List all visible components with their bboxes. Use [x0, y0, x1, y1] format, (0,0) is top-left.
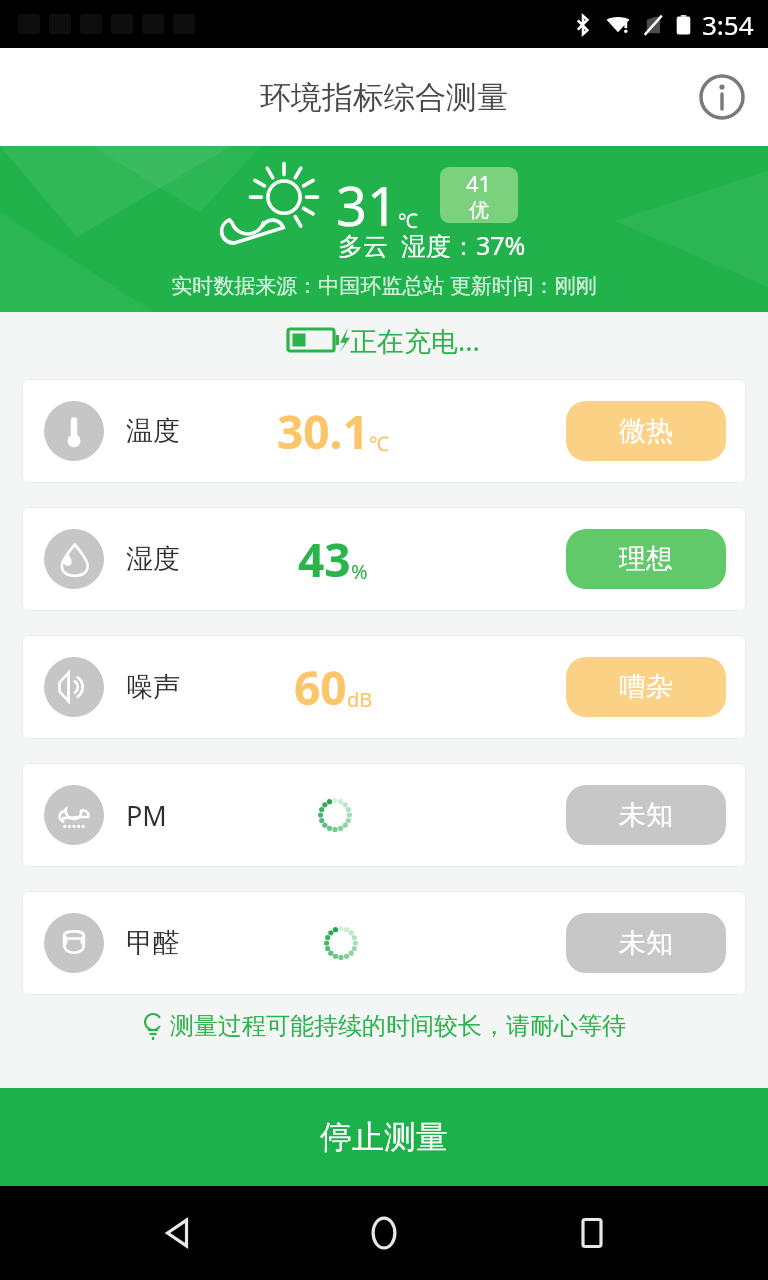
- button[interactable]: 温度: [22, 379, 746, 483]
- staticText: 未知: [619, 798, 673, 832]
- staticText: 多云 湿度：37%: [338, 228, 526, 262]
- staticText: 甲醛: [126, 926, 180, 960]
- staticText: PM: [126, 797, 167, 834]
- staticText: 微热: [619, 414, 673, 448]
- button[interactable]: 湿度: [22, 507, 746, 611]
- button[interactable]: 噪声: [22, 635, 746, 739]
- staticText: 优: [469, 198, 489, 223]
- staticText: ℃: [398, 207, 418, 234]
- staticText: 温度: [126, 414, 180, 448]
- staticText: 环境指标综合测量: [260, 78, 508, 117]
- staticText: ℃: [369, 430, 389, 457]
- button[interactable]: PM: [22, 763, 746, 867]
- button[interactable]: 未知: [566, 785, 726, 845]
- button[interactable]: 嘈杂: [566, 657, 726, 717]
- staticText: 未知: [619, 926, 673, 960]
- button[interactable]: Back: [146, 1202, 208, 1264]
- staticText: 30.1: [277, 400, 369, 463]
- staticText: 嘈杂: [619, 670, 673, 704]
- staticText: 31: [336, 168, 398, 242]
- button[interactable]: Info: [694, 69, 750, 125]
- staticText: 湿度: [126, 542, 180, 576]
- staticText: %: [351, 558, 368, 585]
- staticText: 理想: [619, 542, 673, 576]
- staticText: 噪声: [126, 670, 180, 704]
- button[interactable]: 甲醛: [22, 891, 746, 995]
- staticText: 3:54: [702, 7, 754, 42]
- button[interactable]: Recents: [561, 1202, 623, 1264]
- staticText: dB: [347, 686, 373, 713]
- staticText: 实时数据来源：中国环监总站 更新时间：刚刚: [0, 271, 768, 300]
- button[interactable]: 理想: [566, 529, 726, 589]
- staticText: 60: [294, 656, 347, 719]
- button[interactable]: Home: [353, 1202, 415, 1264]
- button[interactable]: 停止测量: [0, 1088, 768, 1186]
- staticText: 停止测量: [320, 1117, 448, 1157]
- staticText: 测量过程可能持续的时间较长，请耐心等待: [170, 1011, 626, 1041]
- staticText: 43: [298, 528, 351, 591]
- staticText: 正在充电...: [350, 322, 480, 359]
- staticText: 41: [466, 168, 492, 198]
- button[interactable]: 微热: [566, 401, 726, 461]
- button[interactable]: 未知: [566, 913, 726, 973]
